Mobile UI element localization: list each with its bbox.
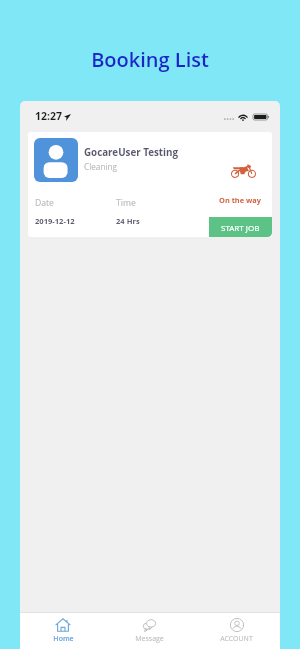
staticText: 24 Hrs xyxy=(116,216,140,226)
staticText: GocareUser Testing xyxy=(84,146,179,159)
staticText: Date xyxy=(35,197,54,209)
staticText: 12:27 xyxy=(35,109,62,123)
staticText: Cleaning xyxy=(84,161,117,172)
staticText: START JOB xyxy=(221,222,260,233)
button[interactable]: ACCOUNT xyxy=(193,613,280,649)
button[interactable]: Message xyxy=(106,613,193,649)
staticText: Time xyxy=(116,197,136,209)
staticText: Home xyxy=(53,634,74,644)
staticText: Booking List xyxy=(0,46,300,73)
staticText: 2019-12-12 xyxy=(35,216,75,226)
button[interactable]: Home xyxy=(20,613,106,649)
button[interactable]: GocareUser Testing xyxy=(28,132,272,237)
staticText: ACCOUNT xyxy=(220,634,253,644)
staticText: On the way xyxy=(219,195,262,205)
staticText: Message xyxy=(135,634,164,644)
button[interactable]: START JOB xyxy=(209,217,272,237)
